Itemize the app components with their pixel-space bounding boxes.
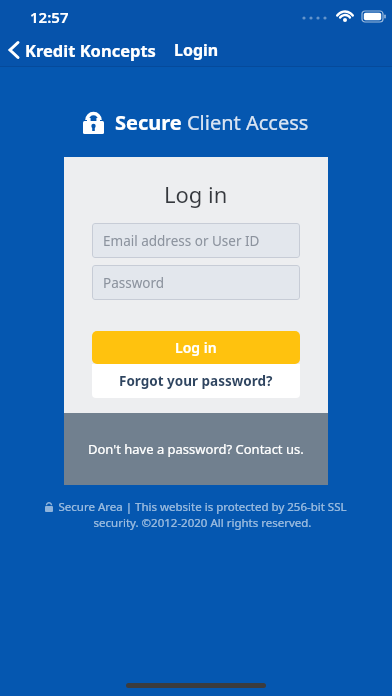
button[interactable]: Password [92,265,300,300]
staticText: Log in [164,179,228,209]
staticText: Forgot your password? [119,372,273,390]
button[interactable]: Forgot your password? [92,364,300,398]
staticText: Kredit Koncepts [25,39,156,61]
button[interactable]: Don't have a password? Contact us. [64,413,328,485]
button[interactable]: Email address or User ID [92,223,300,258]
button[interactable]: Log in [92,331,300,364]
button[interactable]: Kredit Koncepts [8,39,156,61]
staticText: 12:57 [30,7,69,27]
staticText: Secure Client Access [115,109,309,136]
staticText: Secure Area | This website is protected … [58,499,347,530]
staticText: Don't have a password? Contact us. [88,440,304,458]
staticText: Password [103,274,165,292]
staticText: Login [174,39,219,61]
staticText: Log in [175,338,217,357]
staticText: Email address or User ID [103,232,260,250]
